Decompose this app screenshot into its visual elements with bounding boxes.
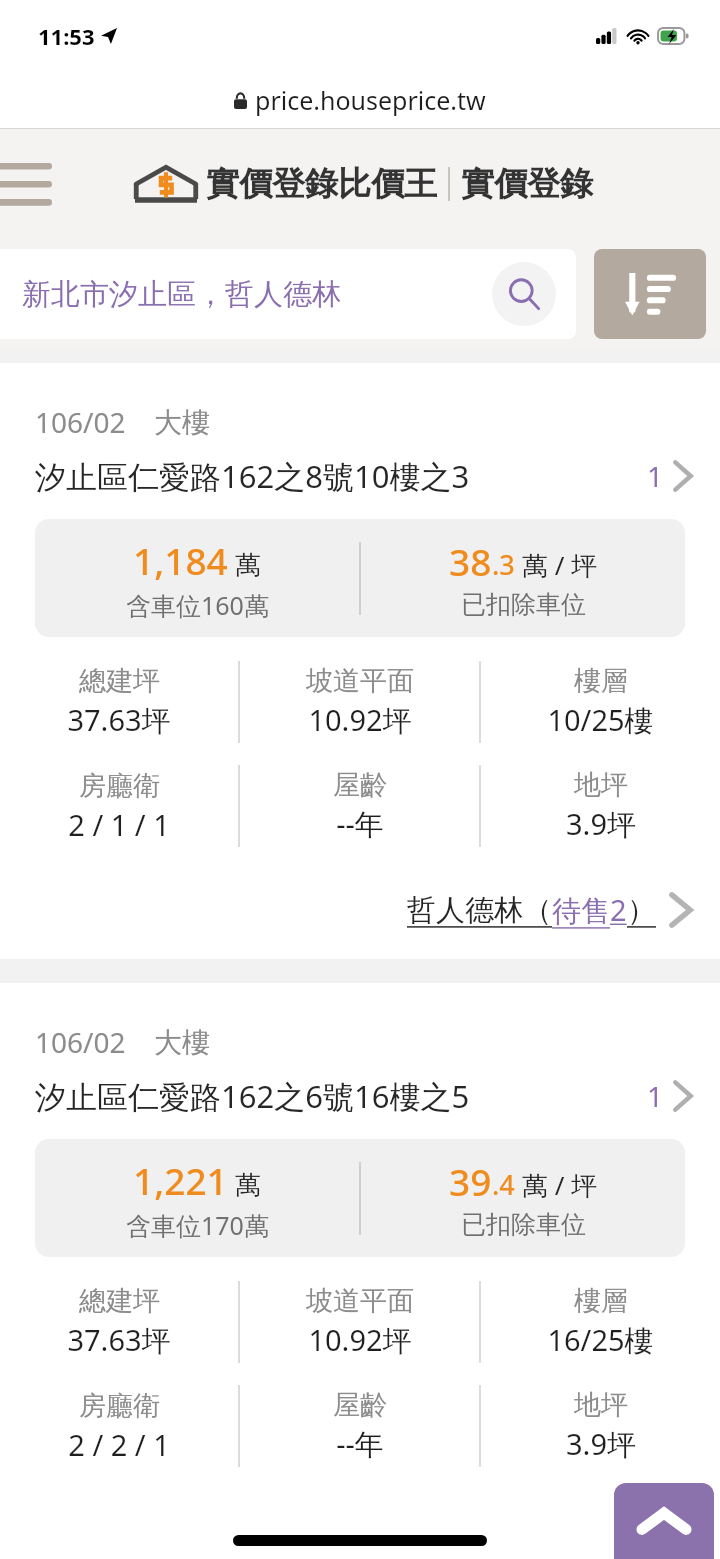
staticText: 已扣除車位 bbox=[461, 1209, 586, 1240]
staticText: 汐止區仁愛路162之8號10樓之3 bbox=[35, 455, 470, 497]
staticText: 1,184 bbox=[133, 535, 228, 585]
staticText: 37.63坪 bbox=[67, 700, 171, 740]
button[interactable]: 哲人德林（ bbox=[407, 889, 694, 931]
button[interactable]: Sort bbox=[594, 249, 706, 339]
staticText: 總建坪 bbox=[79, 664, 160, 698]
staticText: 樓層 bbox=[574, 1284, 628, 1318]
staticText: 大樓 bbox=[154, 1025, 210, 1060]
staticText: 37.63坪 bbox=[67, 1320, 171, 1360]
staticText: 10/25樓 bbox=[547, 700, 654, 740]
staticText: 總建坪 bbox=[79, 1284, 160, 1318]
staticText: 10.92坪 bbox=[308, 1320, 412, 1360]
staticText: 萬 bbox=[235, 549, 261, 582]
staticText: 實價登錄 bbox=[461, 163, 593, 205]
staticText: .3 bbox=[492, 546, 515, 583]
staticText: 3.9坪 bbox=[566, 1424, 636, 1464]
staticText: 樓層 bbox=[574, 664, 628, 698]
staticText: 萬 bbox=[235, 1169, 261, 1202]
staticText: 1 bbox=[647, 457, 664, 495]
staticText: 坡道平面 bbox=[306, 664, 414, 698]
staticText: 39 bbox=[449, 1156, 492, 1206]
staticText: price.houseprice.tw bbox=[255, 83, 486, 117]
staticText: --年 bbox=[336, 804, 384, 844]
button[interactable]: 實價登錄比價王 bbox=[135, 163, 593, 205]
staticText: 16/25樓 bbox=[547, 1320, 654, 1360]
staticText: 房廳衛 bbox=[79, 1389, 160, 1423]
staticText: 哲人德林（ bbox=[407, 892, 552, 929]
staticText: --年 bbox=[336, 1424, 384, 1464]
staticText: 2 / 1 / 1 bbox=[68, 805, 170, 844]
staticText: 已扣除車位 bbox=[461, 589, 586, 620]
button[interactable]: Scroll to top bbox=[614, 1483, 714, 1559]
staticText: 萬 / 坪 bbox=[522, 1167, 598, 1203]
staticText: 3.9坪 bbox=[566, 804, 636, 844]
button[interactable]: 106/02 bbox=[0, 363, 720, 959]
staticText: .4 bbox=[492, 1166, 515, 1203]
staticText: 11:53 bbox=[38, 21, 95, 51]
staticText: 實價登錄比價王 bbox=[206, 163, 437, 205]
staticText: 38 bbox=[449, 536, 492, 586]
staticText: 地坪 bbox=[574, 768, 628, 802]
staticText: 1,221 bbox=[133, 1155, 228, 1205]
staticText: 106/02 bbox=[35, 403, 126, 441]
staticText: 屋齡 bbox=[333, 768, 387, 802]
button[interactable]: 新北市汐止區，哲人德林 bbox=[0, 249, 576, 339]
staticText: 2 / 2 / 1 bbox=[68, 1425, 170, 1464]
staticText: 屋齡 bbox=[333, 1388, 387, 1422]
staticText: 坡道平面 bbox=[306, 1284, 414, 1318]
staticText: 汐止區仁愛路162之6號16樓之5 bbox=[35, 1075, 470, 1117]
button[interactable]: Menu bbox=[0, 149, 58, 219]
staticText: 106/02 bbox=[35, 1023, 126, 1061]
staticText: 含車位160萬 bbox=[126, 588, 269, 622]
staticText: 新北市汐止區，哲人德林 bbox=[22, 276, 341, 313]
staticText: 萬 / 坪 bbox=[522, 547, 598, 583]
staticText: 含車位170萬 bbox=[126, 1208, 269, 1242]
button[interactable]: 106/02 bbox=[0, 983, 720, 1507]
staticText: ） bbox=[627, 892, 656, 929]
staticText: 10.92坪 bbox=[308, 700, 412, 740]
staticText: 待售2 bbox=[552, 890, 627, 930]
staticText: 大樓 bbox=[154, 405, 210, 440]
staticText: 1 bbox=[647, 1077, 664, 1115]
staticText: 房廳衛 bbox=[79, 769, 160, 803]
staticText: 地坪 bbox=[574, 1388, 628, 1422]
